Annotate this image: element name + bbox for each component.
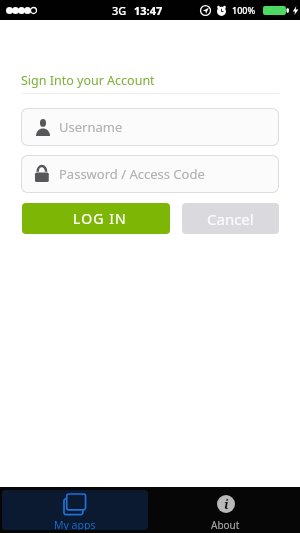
- staticText: Username: [59, 118, 123, 136]
- staticText: My apps: [54, 518, 96, 530]
- button[interactable]: Username: [21, 108, 279, 146]
- button[interactable]: Cancel: [182, 203, 279, 234]
- staticText: Cancel: [207, 209, 254, 229]
- staticText: 13:47: [134, 3, 163, 18]
- staticText: About: [211, 518, 240, 532]
- staticText: 100%: [232, 4, 256, 16]
- staticText: 3G: [112, 3, 127, 18]
- staticText: Password / Access Code: [59, 165, 205, 183]
- staticText: LOG IN: [73, 209, 127, 228]
- other: My apps: [64, 494, 86, 515]
- button[interactable]: LOG IN: [22, 203, 170, 234]
- button[interactable]: About: [150, 487, 300, 533]
- button[interactable]: Password / Access Code: [21, 155, 279, 193]
- button[interactable]: My apps: [2, 490, 148, 530]
- staticText: i: [224, 495, 229, 513]
- other: About: [217, 495, 235, 513]
- staticText: Sign Into your Account: [21, 72, 155, 89]
